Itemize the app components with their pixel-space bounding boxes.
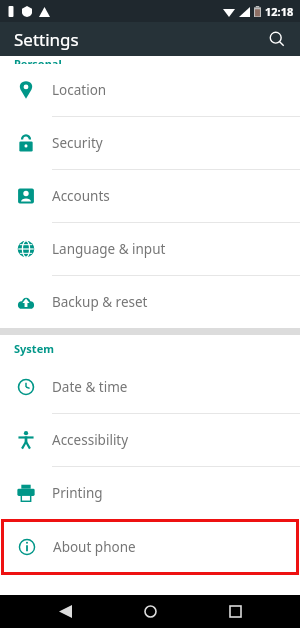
staticText: Printing — [52, 484, 103, 502]
button[interactable]: Search — [262, 24, 292, 54]
button[interactable]: Language & input — [0, 223, 300, 275]
button[interactable]: Accounts — [0, 170, 300, 222]
staticText: Language & input — [52, 240, 166, 258]
button[interactable]: About phone — [1, 519, 299, 575]
button[interactable]: Backup & reset — [0, 276, 300, 328]
staticText: Date & time — [52, 378, 128, 396]
button[interactable]: Printing — [0, 467, 300, 519]
staticText: Location — [52, 81, 107, 99]
button[interactable]: Security — [0, 117, 300, 169]
button[interactable]: Recents — [215, 595, 255, 628]
staticText: 12:18 — [265, 4, 294, 19]
staticText: Security — [52, 134, 103, 152]
button[interactable]: Back — [45, 595, 85, 628]
staticText: Settings — [14, 28, 79, 51]
staticText: Accessibility — [52, 431, 129, 449]
button[interactable]: Date & time — [0, 361, 300, 413]
button[interactable]: Accessibility — [0, 414, 300, 466]
button[interactable]: Location — [0, 64, 300, 116]
staticText: Accounts — [52, 187, 110, 205]
staticText: Backup & reset — [52, 293, 148, 311]
staticText: About phone — [53, 538, 136, 556]
button[interactable]: Home — [130, 595, 170, 628]
staticText: Personal — [14, 56, 62, 64]
staticText: System — [14, 341, 54, 356]
